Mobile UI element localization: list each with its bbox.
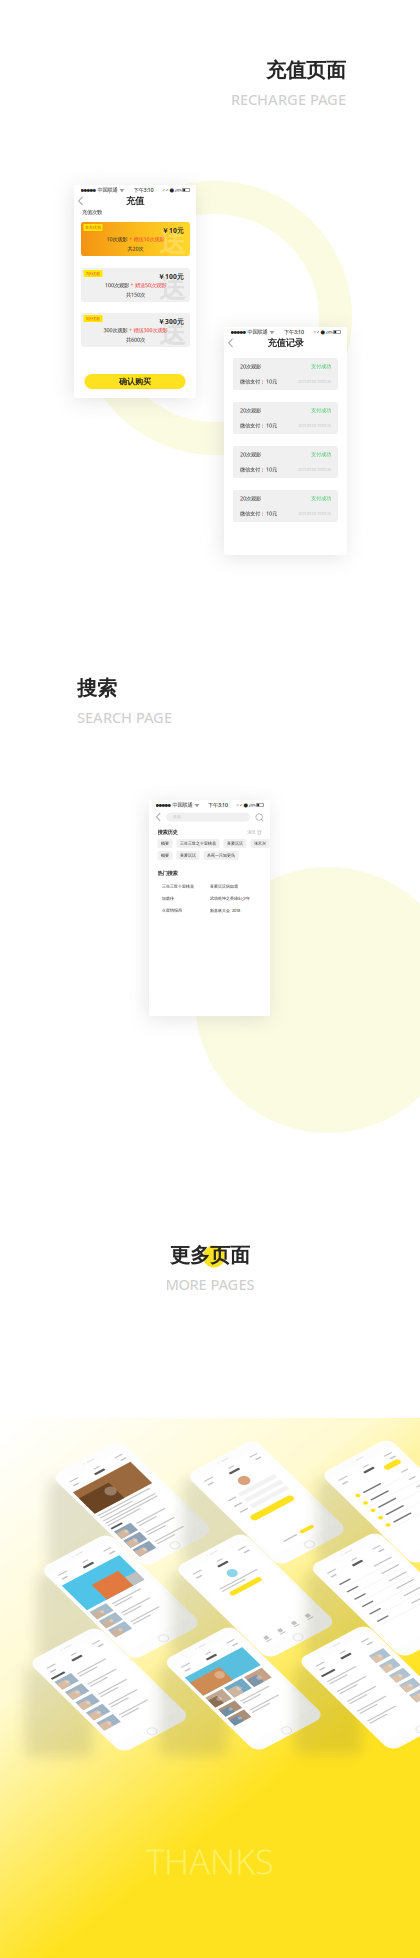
- button[interactable]: 短篇传: [162, 896, 210, 901]
- button[interactable]: 确认购买: [84, 374, 185, 389]
- button[interactable]: Back: [75, 194, 86, 208]
- staticText: 20次观影: [240, 407, 261, 414]
- staticText: 下午3:10: [133, 186, 153, 194]
- staticText: 共20次: [127, 245, 143, 252]
- staticText: 赠送10次观影: [133, 236, 164, 243]
- staticText: 送: [159, 226, 186, 259]
- staticText: 20次观影: [240, 451, 261, 458]
- staticText: 充值次数: [82, 209, 102, 216]
- staticText: ⌾ ✓ ⬤ 24%: [236, 802, 255, 808]
- staticText: 20次观影: [240, 363, 261, 370]
- staticText: 2017-07-03 10:57:25: [298, 379, 331, 384]
- staticText: 搜索: [77, 676, 117, 701]
- staticText: 杀死一只知更鸟: [207, 853, 235, 858]
- staticText: 微信支付： 10元: [240, 466, 277, 473]
- button[interactable]: 新喜林大会 2018: [210, 908, 240, 913]
- button[interactable]: 清空: [247, 830, 261, 835]
- button[interactable]: 三生三世十里桃花: [162, 884, 210, 889]
- staticText: ●●●●●: [155, 803, 170, 807]
- staticText: 充值页面: [266, 58, 346, 83]
- staticText: 300次观影: [103, 327, 127, 334]
- staticText: 下午3:10: [284, 328, 304, 336]
- button[interactable]: 20次观影: [233, 446, 338, 478]
- staticText: 武动乾坤之英雄出少年: [210, 896, 250, 901]
- button[interactable]: 概要: [157, 839, 172, 848]
- button[interactable]: Back: [225, 336, 236, 350]
- staticText: +: [129, 236, 132, 243]
- staticText: 喜爱沉沉: [227, 841, 243, 846]
- staticText: 三生三世之十里桃花: [180, 841, 216, 846]
- button[interactable]: 20次观影: [233, 490, 338, 522]
- button[interactable]: 喜爱沉沉: [223, 839, 246, 848]
- staticText: ￥10元: [162, 226, 184, 235]
- staticText: 短篇传: [162, 896, 174, 901]
- staticText: 喜爱沉沉: [180, 853, 196, 858]
- staticText: 下午3:10: [208, 801, 228, 809]
- staticText: 微信支付： 10元: [240, 510, 277, 517]
- staticText: 7折优惠: [86, 271, 100, 276]
- staticText: 搜索: [173, 814, 181, 819]
- staticText: 首充优惠: [85, 225, 101, 230]
- staticText: 三生三世十里桃花: [162, 884, 194, 889]
- staticText: ￥300元: [158, 317, 184, 326]
- staticText: 送: [159, 272, 186, 305]
- staticText: 概要: [161, 853, 169, 858]
- staticText: +: [130, 282, 133, 289]
- staticText: ⌾ ✓ ⬤ 24%: [162, 187, 181, 193]
- staticText: 微信支付： 10元: [240, 422, 277, 429]
- staticText: 更多页面: [170, 1243, 250, 1268]
- staticText: ᯤ: [119, 186, 124, 194]
- button[interactable]: 20次观影: [233, 402, 338, 434]
- button[interactable]: 武动乾坤之英雄出少年: [210, 896, 250, 901]
- staticText: ￥100元: [158, 272, 184, 281]
- staticText: 2017-07-03 10:57:25: [298, 511, 331, 516]
- button[interactable]: 火星情报局: [162, 908, 210, 913]
- staticText: 中国联通: [170, 802, 194, 808]
- staticText: 概要: [161, 841, 169, 846]
- staticText: ᯤ: [194, 801, 199, 809]
- staticText: 新喜林大会 2018: [210, 908, 240, 913]
- staticText: 热门搜索: [157, 870, 177, 877]
- staticText: ᯤ: [269, 328, 274, 336]
- staticText: ●●●●●: [80, 188, 95, 192]
- staticText: 送: [159, 317, 186, 350]
- button[interactable]: 三生三世之十里桃花: [176, 839, 219, 848]
- staticText: ⌾ ✓ ⬤ 24%: [313, 329, 332, 335]
- staticText: RECHARGE PAGE: [231, 90, 346, 109]
- staticText: MORE PAGES: [165, 1275, 254, 1294]
- staticText: THANKS: [146, 1838, 274, 1884]
- staticText: 确认购买: [119, 377, 151, 386]
- staticText: 2017-07-03 10:57:25: [298, 423, 331, 428]
- staticText: 赠送50次观影: [135, 282, 166, 289]
- staticText: 支付成功: [311, 495, 331, 502]
- staticText: 2017-07-03 10:57:25: [298, 467, 331, 472]
- staticText: 清空: [247, 830, 255, 835]
- staticText: 共150次: [126, 291, 145, 298]
- staticText: SEARCH PAGE: [77, 708, 172, 727]
- button[interactable]: 20次观影: [233, 358, 338, 390]
- staticText: 搜索历史: [157, 829, 177, 836]
- staticText: 微信支付： 10元: [240, 378, 277, 385]
- button[interactable]: Search: [255, 813, 263, 821]
- button[interactable]: 喜爱沉沉: [176, 851, 199, 860]
- staticText: 赠送300次观影: [133, 327, 167, 334]
- staticText: 5折优惠: [86, 316, 100, 321]
- staticText: ●●●●●: [230, 330, 245, 334]
- staticText: 支付成功: [311, 407, 331, 414]
- staticText: 10次观影: [106, 236, 127, 243]
- staticText: 喜爱沉沉病如霜: [210, 884, 238, 889]
- staticText: 支付成功: [311, 363, 331, 370]
- button[interactable]: 杀死一只知更鸟: [203, 851, 238, 860]
- staticText: 张艺兴: [254, 841, 266, 846]
- button[interactable]: 喜爱沉沉病如霜: [210, 884, 238, 889]
- button[interactable]: Back: [156, 813, 161, 821]
- button[interactable]: 张艺兴: [250, 839, 269, 848]
- staticText: 中国联通: [95, 187, 119, 193]
- staticText: +: [129, 327, 132, 334]
- staticText: 支付成功: [311, 451, 331, 458]
- staticText: 100次观影: [105, 282, 129, 289]
- button[interactable]: 概要: [157, 851, 172, 860]
- staticText: 中国联通: [245, 329, 269, 335]
- staticText: 20次观影: [240, 495, 261, 502]
- staticText: 充值: [126, 195, 144, 207]
